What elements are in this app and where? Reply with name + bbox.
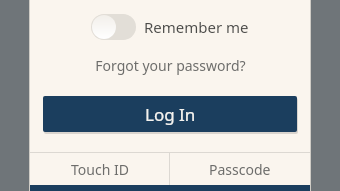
button[interactable]: Touch ID: [30, 153, 169, 185]
staticText: Forgot your password?: [95, 56, 246, 75]
staticText: Touch ID: [71, 160, 129, 179]
button[interactable]: Log In: [43, 96, 297, 132]
button[interactable]: Passcode: [170, 153, 310, 185]
staticText: Passcode: [209, 160, 271, 179]
button[interactable]: Remember me: [89, 12, 251, 42]
staticText: Log In: [145, 103, 196, 126]
staticText: Remember me: [144, 17, 249, 37]
button[interactable]: Forgot your password?: [89, 54, 252, 77]
